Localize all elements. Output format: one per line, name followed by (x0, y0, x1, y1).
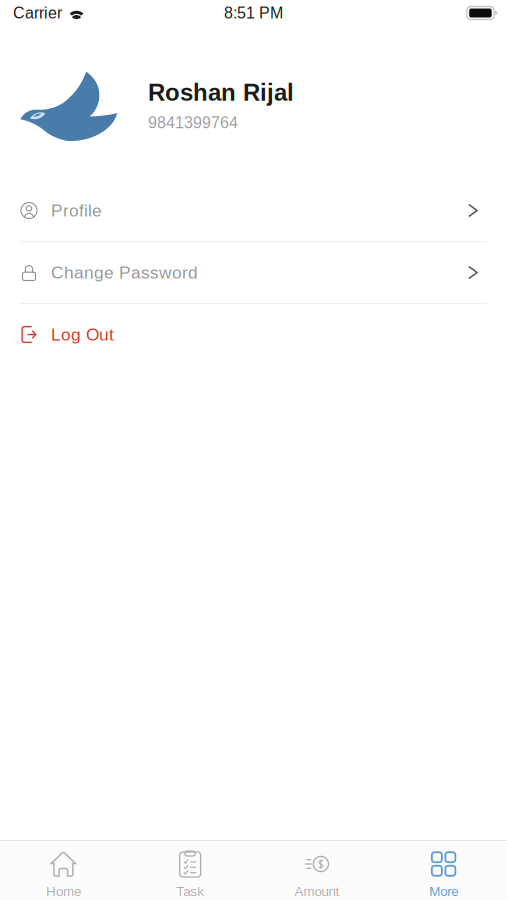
staticText: Amount (294, 884, 339, 899)
staticText: More (429, 884, 458, 899)
button[interactable]: Task (127, 841, 254, 900)
staticText: Carrier (13, 4, 62, 22)
staticText: Change Password (51, 263, 198, 282)
button[interactable]: Log Out (0, 304, 507, 365)
staticText: Home (46, 884, 81, 899)
button[interactable]: Change Password (0, 242, 507, 303)
staticText: 9841399764 (148, 114, 238, 132)
button[interactable]: Home (0, 841, 127, 900)
button[interactable]: More (380, 841, 507, 900)
button[interactable]: Profile (0, 180, 507, 241)
staticText: Profile (51, 201, 102, 220)
staticText: Roshan Rijal (148, 79, 294, 106)
button[interactable]: Amount (253, 841, 380, 900)
staticText: 8:51 PM (224, 4, 283, 22)
staticText: Task (176, 884, 204, 899)
staticText: Log Out (51, 325, 114, 344)
